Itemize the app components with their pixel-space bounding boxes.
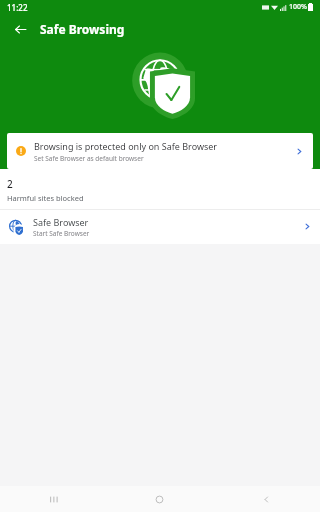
staticText: Harmful sites blocked xyxy=(7,193,84,203)
button[interactable]: Home xyxy=(106,486,213,512)
button[interactable]: Back xyxy=(6,15,34,43)
staticText: Safe Browsing xyxy=(40,21,125,37)
staticText: 11:22 xyxy=(7,2,28,13)
button[interactable]: Safe Browser xyxy=(0,210,320,243)
staticText: Safe Browser xyxy=(33,216,89,228)
button[interactable]: Browsing is protected only on Safe Brows… xyxy=(7,133,313,169)
staticText: 100% xyxy=(289,2,307,12)
staticText: Start Safe Browser xyxy=(33,229,90,238)
staticText: Browsing is protected only on Safe Brows… xyxy=(34,140,218,152)
staticText: 2 xyxy=(7,177,13,191)
button[interactable]: Recents xyxy=(0,486,106,512)
staticText: Set Safe Browser as default browser xyxy=(34,154,144,163)
